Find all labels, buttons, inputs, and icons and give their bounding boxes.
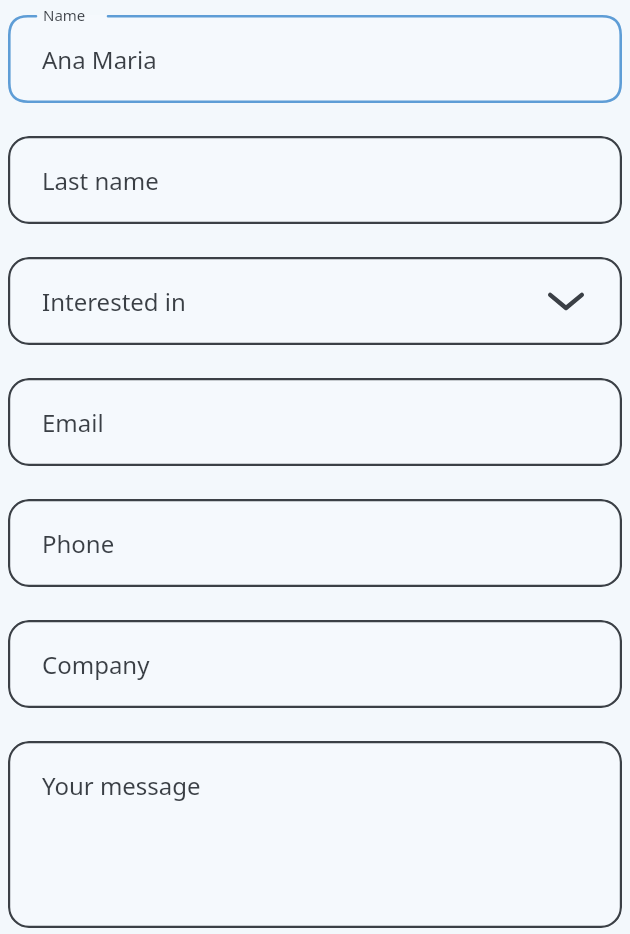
button[interactable]: Ana Maria: [8, 15, 622, 103]
staticText: Company: [42, 648, 150, 681]
staticText: Last name: [42, 164, 159, 197]
staticText: Interested in: [42, 285, 186, 318]
button[interactable]: Open dropdown: [546, 281, 586, 321]
staticText: Your message: [42, 769, 201, 802]
staticText: Email: [42, 406, 104, 439]
staticText: Name: [43, 5, 86, 25]
button[interactable]: Interested in: [8, 257, 622, 345]
button[interactable]: Your message: [8, 741, 622, 928]
button[interactable]: Last name: [8, 136, 622, 224]
staticText: Phone: [42, 527, 115, 560]
button[interactable]: Phone: [8, 499, 622, 587]
staticText: Ana Maria: [42, 43, 157, 76]
button[interactable]: Company: [8, 620, 622, 708]
button[interactable]: Email: [8, 378, 622, 466]
